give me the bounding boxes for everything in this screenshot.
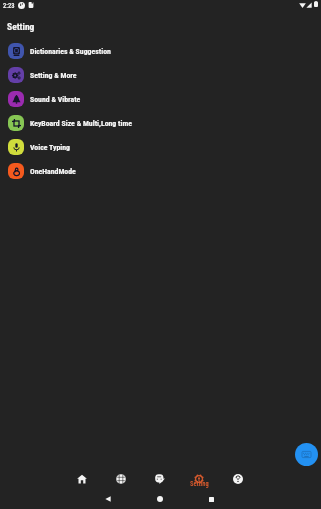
staticText: Sound & Vibrate — [30, 95, 81, 104]
button[interactable]: OneHandMode — [0, 159, 321, 183]
staticText: Setting & More — [30, 71, 77, 80]
staticText: Dictionaries & Suggestion — [30, 47, 111, 56]
button[interactable]: Home — [144, 491, 176, 507]
staticText: Voice Typing — [30, 143, 71, 152]
button[interactable]: Setting — [180, 467, 218, 491]
button[interactable]: Dictionaries & Suggestion — [0, 39, 321, 63]
button[interactable]: Home — [63, 467, 101, 491]
button[interactable]: Recents — [195, 491, 227, 507]
button[interactable]: Setting & More — [0, 63, 321, 87]
button[interactable]: KeyBoard Size & Multi,Long time — [0, 111, 321, 135]
staticText: 2:23 — [3, 2, 15, 10]
button[interactable]: Voice Typing — [0, 135, 321, 159]
staticText: Setting — [190, 480, 209, 488]
staticText: KeyBoard Size & Multi,Long time — [30, 119, 132, 128]
button[interactable]: Stickers — [141, 467, 179, 491]
button[interactable]: Help — [219, 467, 257, 491]
button[interactable]: Sound & Vibrate — [0, 87, 321, 111]
staticText: Setting — [7, 21, 35, 32]
staticText: OneHandMode — [30, 167, 76, 176]
button[interactable]: Keyboard — [295, 443, 318, 466]
button[interactable]: Language — [102, 467, 140, 491]
button[interactable]: Back — [92, 491, 124, 507]
